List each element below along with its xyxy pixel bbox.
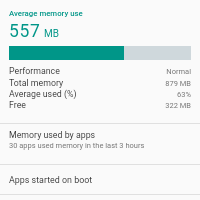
staticText: MB (44, 28, 59, 40)
staticText: 322 MB (0, 101, 191, 110)
staticText: 30 apps used memory in the last 3 hours (9, 141, 145, 150)
staticText: 557 (9, 21, 41, 42)
button[interactable]: Apps started on boot (0, 165, 200, 195)
staticText: 63% (0, 90, 191, 99)
staticText: Average used (%) (9, 89, 77, 99)
staticText: 879 MB (0, 79, 191, 88)
staticText: Apps started on boot (9, 175, 93, 185)
staticText: Total memory (9, 78, 64, 88)
staticText: Performance (9, 66, 60, 76)
staticText: Average memory use (9, 9, 83, 18)
button[interactable]: Memory used by apps (0, 124, 200, 164)
staticText: Memory used by apps (9, 130, 96, 140)
staticText: Normal (0, 67, 191, 76)
staticText: Free (9, 100, 26, 110)
